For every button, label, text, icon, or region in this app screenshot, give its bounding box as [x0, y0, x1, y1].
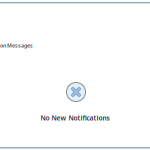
- staticText: No New Notifications: [40, 114, 109, 122]
- staticText: on Messages: [0, 42, 33, 49]
- button[interactable]: on Messages: [0, 40, 150, 51]
